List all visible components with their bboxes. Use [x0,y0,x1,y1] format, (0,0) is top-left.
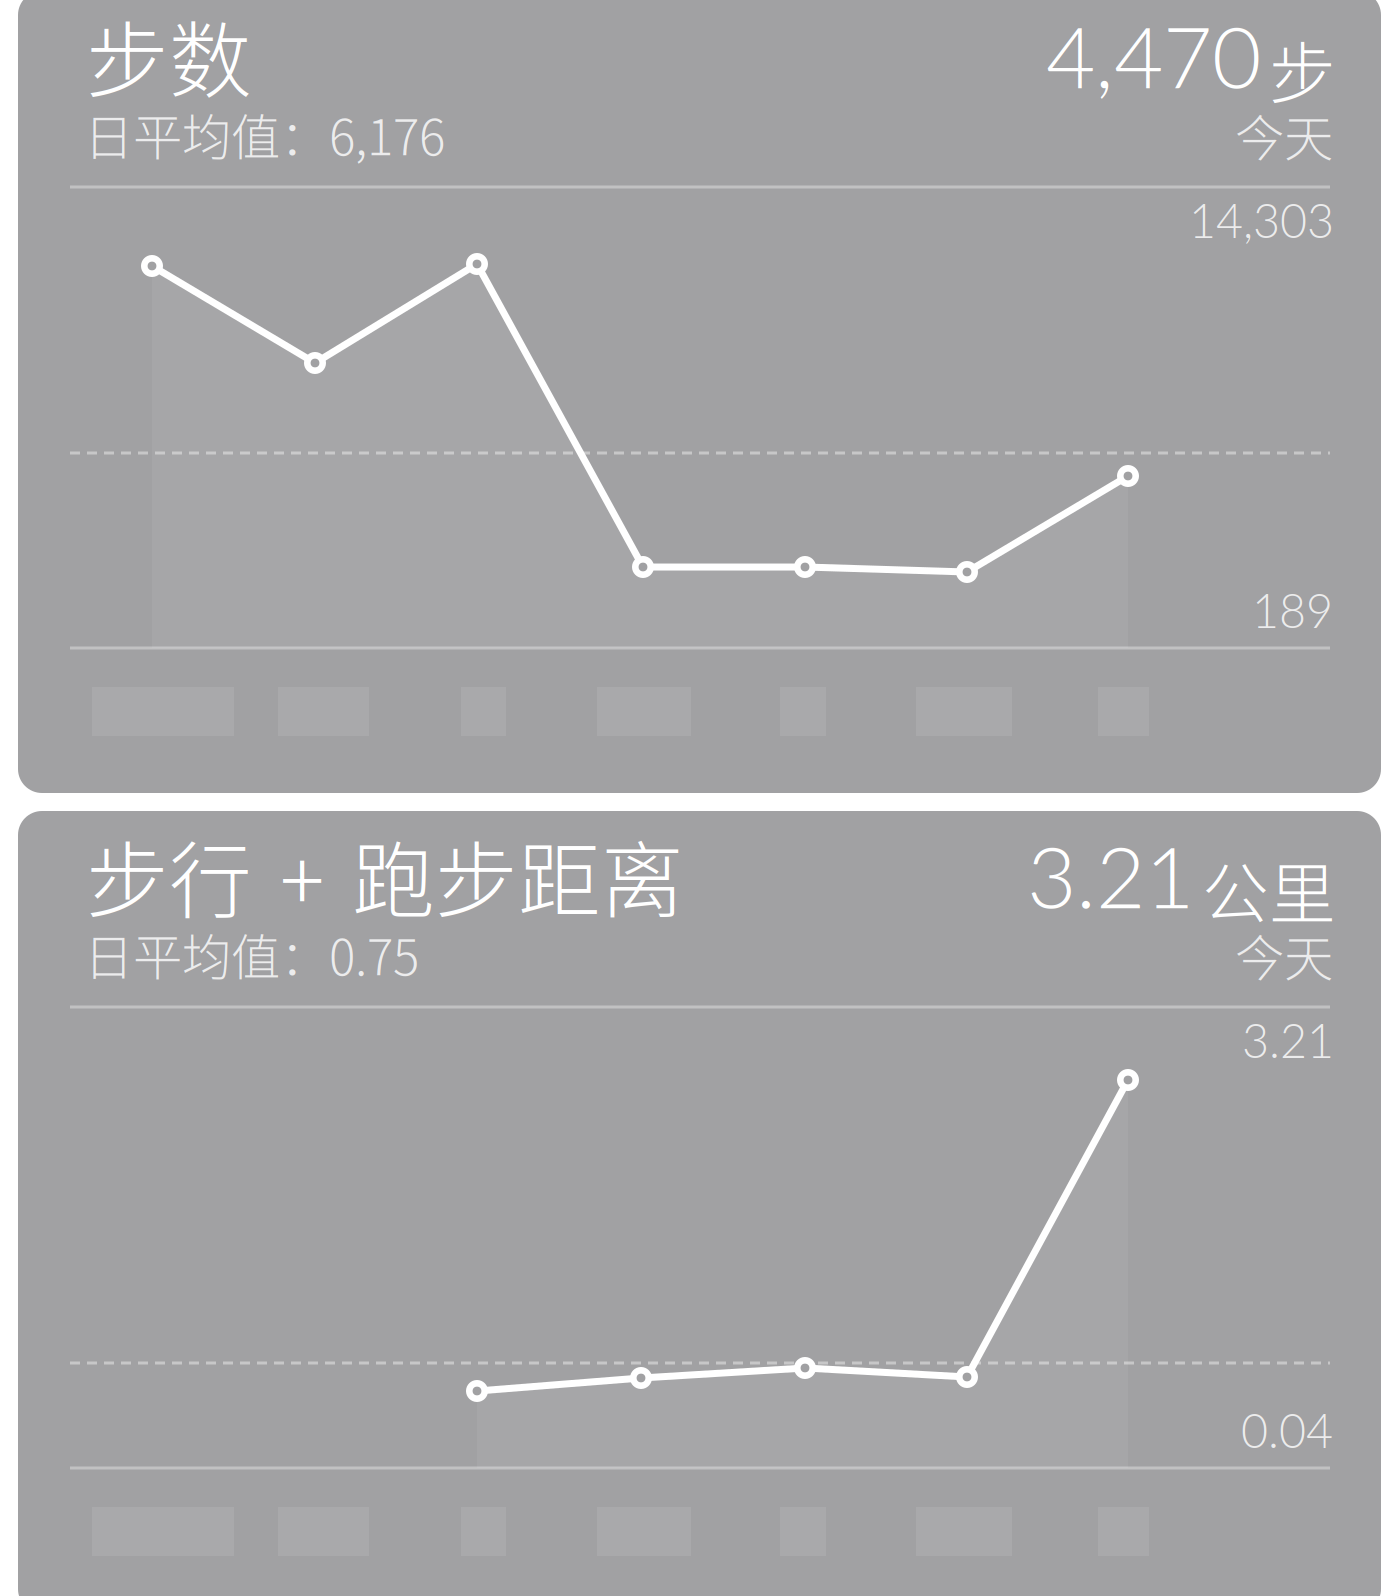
staticText: 4,470 [1046,4,1261,106]
staticText: 公里 [1202,841,1336,937]
staticText: 今天 [1235,919,1333,990]
staticText: 步 [1269,21,1336,117]
staticText: 3.21 [1027,824,1194,926]
button[interactable]: 步数 [18,0,1381,793]
staticText: 步数 [86,0,252,115]
staticText: 日平均值：6,176 [84,98,445,169]
staticText: 日平均值：0.75 [84,918,419,989]
staticText: 步行 + 跑步距离 [86,815,684,935]
staticText: 0.04 [1241,1402,1333,1458]
staticText: 3.21 [1242,1012,1334,1068]
staticText: 14,303 [1189,192,1334,248]
staticText: 189 [1252,582,1333,638]
staticText: 今天 [1235,99,1333,170]
button[interactable]: 步行 + 跑步距离 [18,811,1381,1596]
